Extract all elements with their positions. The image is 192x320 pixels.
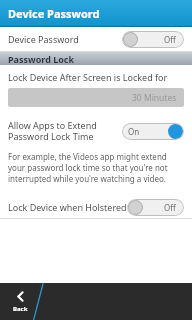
staticText: Device Password xyxy=(8,6,100,21)
staticText: On xyxy=(128,126,140,137)
button[interactable]: Allow Apps to Extend Password Lock Time xyxy=(0,117,192,145)
button[interactable]: 30 Minutes xyxy=(8,88,184,107)
staticText: 30 Minutes xyxy=(132,92,177,104)
staticText: Off xyxy=(164,202,176,213)
staticText: Lock Device After Screen is Locked for xyxy=(8,71,168,83)
button[interactable]: Device Password toggle, Off xyxy=(122,31,184,48)
button[interactable]: Allow Apps to Extend Password Lock Time … xyxy=(122,123,184,140)
staticText: Device Password xyxy=(8,33,79,45)
button[interactable]: Lock Device when Holstered toggle, Off xyxy=(127,199,184,216)
button[interactable]: Device Password xyxy=(0,27,192,51)
staticText: Off xyxy=(164,34,176,45)
staticText: Lock Device when Holstered xyxy=(8,201,127,213)
staticText: For example, the Videos app might extend… xyxy=(8,151,184,184)
button[interactable]: Lock Device when Holstered xyxy=(0,196,192,218)
staticText: Allow Apps to Extend Password Lock Time xyxy=(8,119,122,143)
staticText: Password Lock xyxy=(8,53,75,65)
button[interactable]: Back xyxy=(0,283,40,320)
staticText: Back xyxy=(13,305,28,313)
